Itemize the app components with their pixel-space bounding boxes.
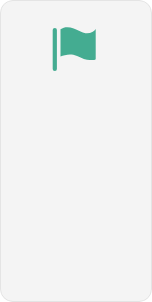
button[interactable]: Flag card xyxy=(0,0,152,302)
button[interactable]: Flag xyxy=(50,24,100,74)
